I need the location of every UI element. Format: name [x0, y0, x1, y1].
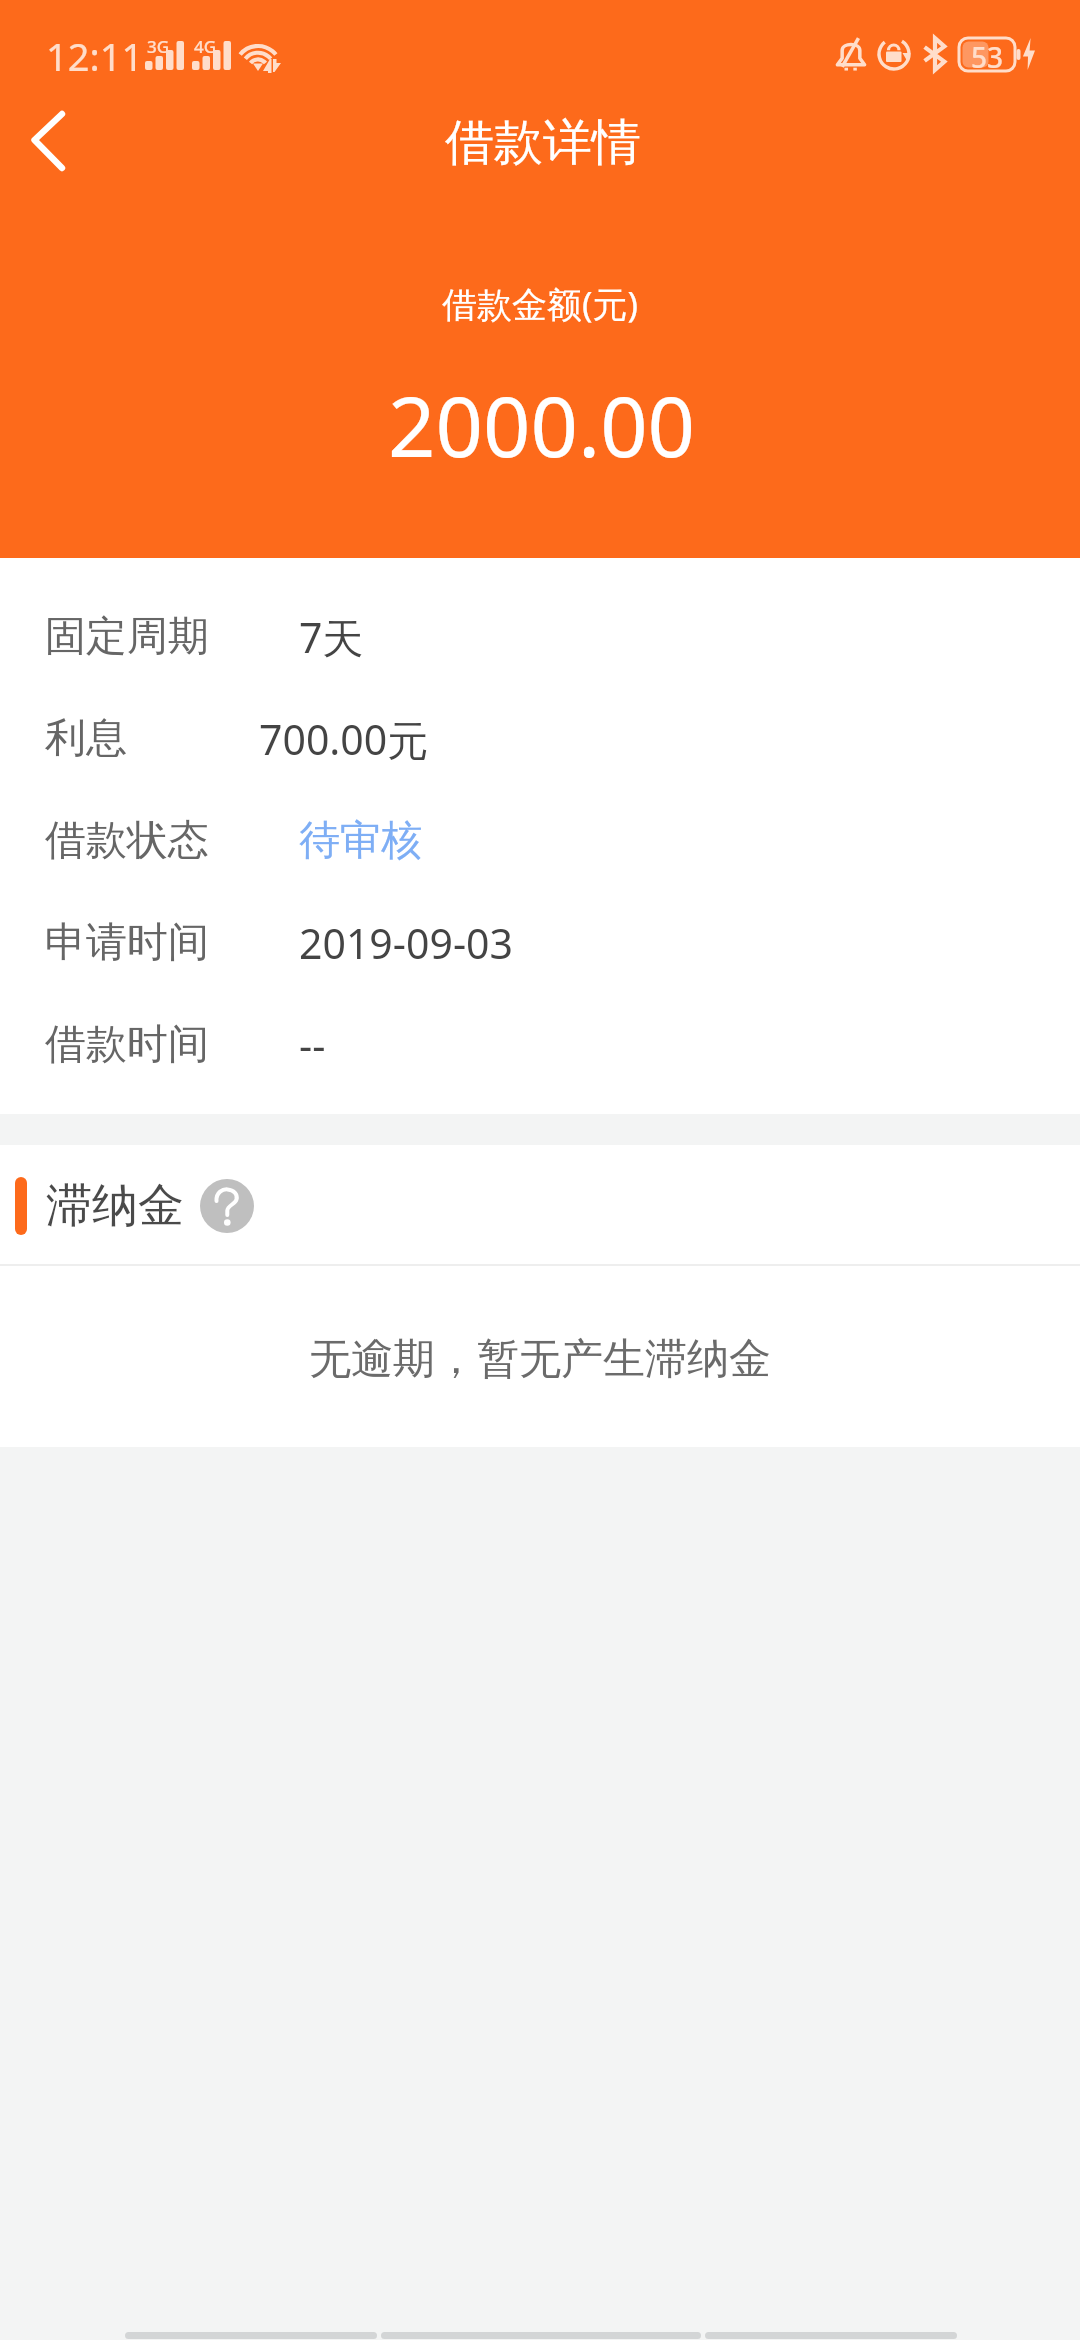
staticText: 12:11 — [46, 30, 144, 82]
staticText: 2019-09-03 — [299, 915, 514, 971]
button[interactable]: 滞纳金 — [0, 1145, 1080, 1266]
staticText: 申请时间 — [45, 917, 209, 969]
staticText: -- — [299, 1017, 326, 1073]
button[interactable]: 利息 — [0, 688, 1080, 790]
staticText: 固定周期 — [45, 611, 209, 663]
button[interactable]: Help — [200, 1179, 254, 1233]
staticText: 利息 — [45, 713, 127, 765]
staticText: 借款时间 — [45, 1019, 209, 1071]
staticText: 2000.00 — [388, 368, 696, 478]
staticText: 无逾期，暂无产生滞纳金 — [309, 1333, 771, 1386]
staticText: 4G — [194, 35, 217, 58]
button[interactable]: 借款状态 — [0, 790, 1080, 892]
staticText: 7天 — [299, 609, 364, 665]
button[interactable]: 固定周期 — [0, 586, 1080, 688]
staticText: 借款详情 — [445, 112, 641, 174]
staticText: 待审核 — [299, 815, 422, 867]
staticText: 借款金额(元) — [442, 280, 639, 328]
button[interactable]: 申请时间 — [0, 892, 1080, 994]
staticText: 3G — [147, 35, 170, 58]
staticText: 53 — [971, 38, 1004, 71]
staticText: 滞纳金 — [46, 1177, 184, 1235]
button[interactable]: Back — [0, 92, 100, 188]
staticText: 700.00元 — [259, 711, 429, 767]
staticText: 借款状态 — [45, 815, 209, 867]
button[interactable]: 借款时间 — [0, 994, 1080, 1096]
